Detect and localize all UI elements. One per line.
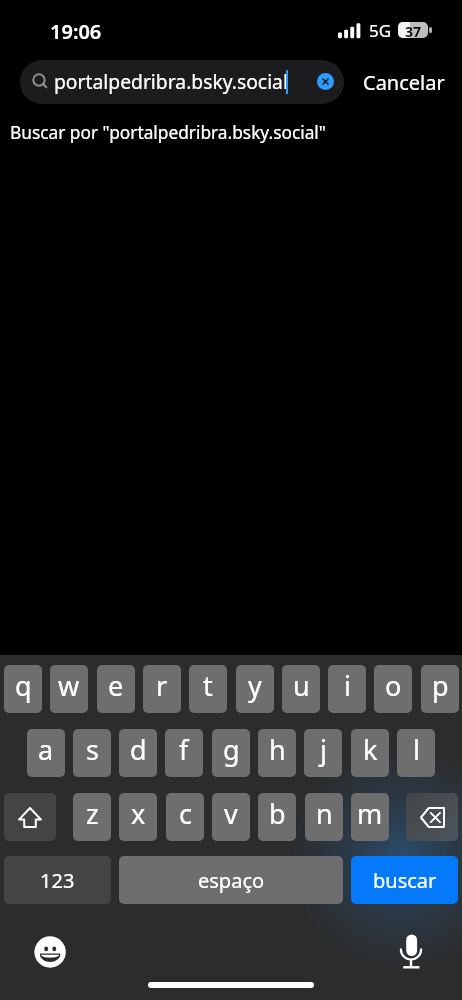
staticText: 37 [405,22,422,38]
button[interactable]: z [73,793,111,841]
staticText: v [224,795,238,832]
button[interactable]: h [258,729,296,777]
staticText: h [269,731,286,768]
button[interactable]: q [4,665,42,713]
button[interactable]: Shift [4,793,56,841]
button[interactable]: m [351,793,389,841]
button[interactable]: d [119,729,157,777]
staticText: p [432,667,449,704]
staticText: espaço [198,867,265,894]
button[interactable]: 123 [4,856,111,904]
button[interactable]: b [258,793,296,841]
button[interactable]: k [351,729,389,777]
staticText: c [179,795,192,832]
staticText: r [156,667,168,704]
button[interactable]: u [282,665,320,713]
staticText: g [223,731,240,768]
staticText: x [131,795,146,832]
staticText: buscar [373,867,437,894]
staticText: 19:06 [50,18,102,45]
button[interactable]: w [50,665,88,713]
staticText: Cancelar [363,69,445,96]
staticText: l [413,731,420,768]
staticText: j [320,731,327,768]
staticText: b [269,795,286,832]
staticText: a [38,731,54,768]
button[interactable]: Ditado [396,930,428,972]
button[interactable]: c [166,793,204,841]
button[interactable]: espaço [119,856,343,904]
button[interactable]: y [236,665,274,713]
button[interactable]: s [73,729,111,777]
staticText: s [86,731,99,768]
button[interactable]: o [374,665,412,713]
button[interactable]: r [143,665,181,713]
button[interactable]: p [421,665,459,713]
button[interactable]: Apagar [406,793,458,841]
staticText: portalpedribra.bsky.social [54,68,288,94]
staticText: w [58,667,80,704]
button[interactable]: g [212,729,250,777]
button[interactable]: e [97,665,135,713]
button[interactable]: Cancelar [352,64,456,100]
staticText: o [385,667,402,704]
button[interactable]: buscar [351,856,458,904]
button[interactable]: Limpar [317,73,334,90]
staticText: e [108,667,124,704]
button[interactable]: v [212,793,250,841]
button[interactable]: j [304,729,342,777]
staticText: t [203,667,213,704]
staticText: z [86,795,99,832]
staticText: i [344,667,351,704]
staticText: u [293,667,310,704]
staticText: Buscar por "portalpedribra.bsky.social" [10,121,326,145]
staticText: 5G [369,19,392,42]
button[interactable]: t [189,665,227,713]
staticText: k [363,731,378,768]
button[interactable]: l [397,729,435,777]
button[interactable]: Emoji [34,936,67,969]
staticText: f [179,731,189,768]
staticText: q [15,667,32,704]
button[interactable]: portalpedribra.bsky.social [20,60,344,104]
staticText: y [248,667,262,704]
button[interactable]: a [27,729,65,777]
staticText: n [316,795,333,832]
staticText: d [130,731,147,768]
staticText: 123 [40,867,75,894]
button[interactable]: i [328,665,366,713]
button[interactable]: n [305,793,343,841]
button[interactable]: f [165,729,203,777]
staticText: m [357,795,383,832]
button[interactable]: x [119,793,157,841]
